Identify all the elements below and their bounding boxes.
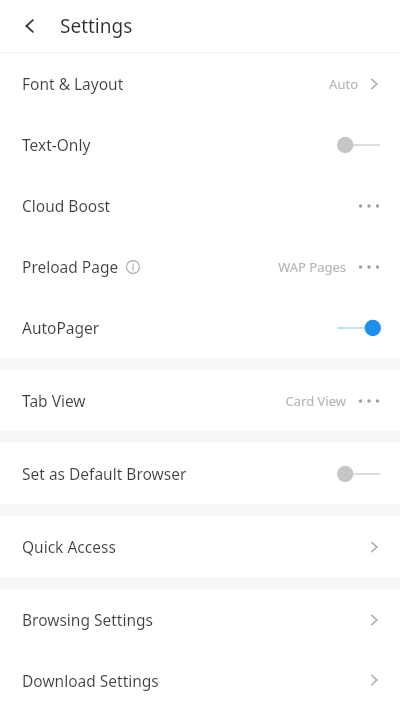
button[interactable]: More options — [356, 255, 382, 279]
button[interactable]: Back — [10, 6, 50, 46]
staticText: Settings — [60, 13, 133, 39]
button[interactable]: Download Settings — [0, 650, 400, 710]
button[interactable]: More options — [356, 389, 382, 413]
button[interactable]: More options — [356, 194, 382, 218]
staticText: Font & Layout — [22, 73, 124, 94]
button[interactable]: Set as Default Browser — [0, 443, 400, 504]
button[interactable]: Text-Only — [0, 114, 400, 175]
staticText: Card View — [285, 392, 346, 410]
staticText: Cloud Boost — [22, 195, 111, 216]
button[interactable]: Quick Access — [0, 516, 400, 577]
staticText: Download Settings — [22, 670, 159, 691]
staticText: Browsing Settings — [22, 609, 153, 630]
staticText: Auto — [329, 75, 358, 93]
button[interactable]: AutoPager — [0, 297, 400, 358]
staticText: WAP Pages — [278, 258, 346, 276]
staticText: Preload Page — [22, 256, 119, 277]
button[interactable]: Font & Layout — [0, 53, 400, 114]
button[interactable]: Cloud Boost — [0, 175, 400, 236]
staticText: Quick Access — [22, 536, 116, 557]
button[interactable]: Browsing Settings — [0, 589, 400, 650]
button[interactable]: Tab View — [0, 370, 400, 431]
button[interactable]: Preload Page — [0, 236, 400, 297]
button[interactable]: Toggle off — [334, 460, 382, 488]
staticText: AutoPager — [22, 317, 100, 338]
staticText: Text-Only — [22, 134, 91, 155]
staticText: Tab View — [22, 390, 86, 411]
staticText: Set as Default Browser — [22, 463, 187, 484]
button[interactable]: Toggle on — [334, 314, 382, 342]
button[interactable]: Toggle off — [334, 131, 382, 159]
